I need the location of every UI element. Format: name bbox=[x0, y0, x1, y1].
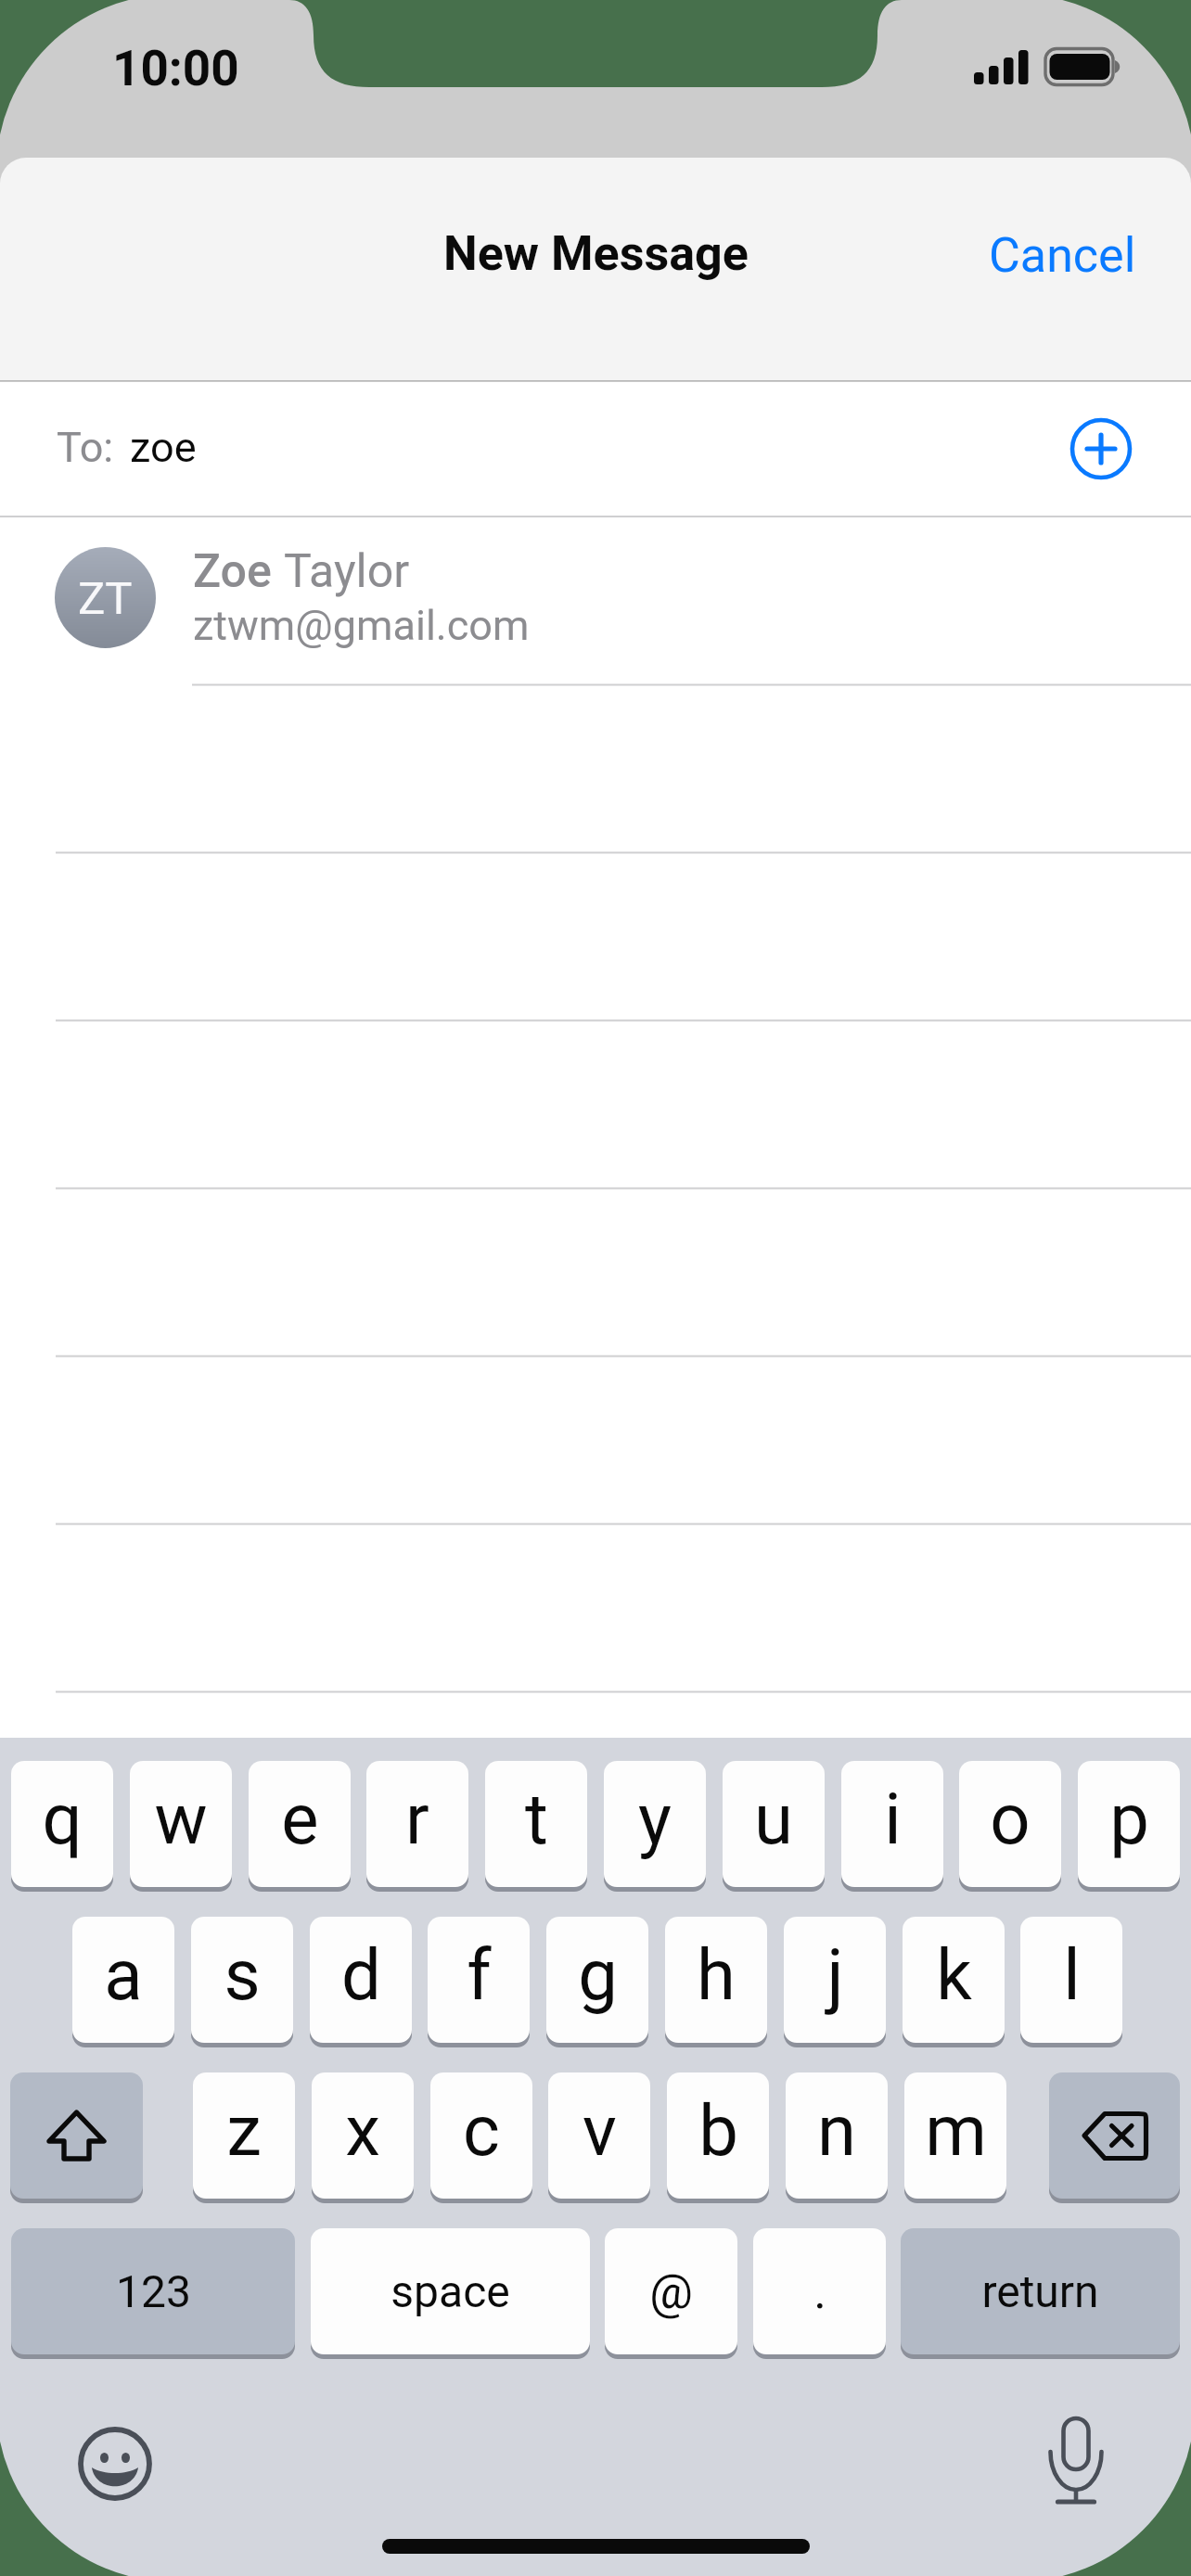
button[interactable]: m bbox=[904, 2072, 1006, 2203]
button[interactable]: j bbox=[784, 1917, 886, 2047]
button[interactable]: v bbox=[548, 2072, 650, 2203]
button[interactable]: e bbox=[249, 1761, 351, 1892]
button[interactable]: u bbox=[723, 1761, 825, 1892]
staticText: ZT bbox=[78, 572, 133, 625]
button[interactable]: y bbox=[604, 1761, 706, 1892]
button[interactable]: 123 bbox=[11, 2228, 295, 2359]
button[interactable]: r bbox=[366, 1761, 468, 1892]
button[interactable]: g bbox=[546, 1917, 648, 2047]
staticText: f bbox=[467, 1933, 492, 2016]
staticText: z bbox=[226, 2089, 262, 2172]
staticText: b bbox=[698, 2089, 738, 2172]
staticText: y bbox=[638, 1778, 672, 1860]
button[interactable]: a bbox=[72, 1917, 174, 2047]
button[interactable]: b bbox=[667, 2072, 769, 2203]
button[interactable]: w bbox=[130, 1761, 232, 1892]
staticText: c bbox=[463, 2089, 500, 2172]
button[interactable]: @ bbox=[605, 2228, 737, 2359]
button[interactable]: ZT bbox=[0, 515, 1191, 680]
button[interactable]: Backspace bbox=[1049, 2072, 1180, 2203]
button[interactable]: return bbox=[901, 2228, 1180, 2359]
button[interactable]: k bbox=[903, 1917, 1005, 2047]
staticText: r bbox=[405, 1778, 429, 1860]
staticText: @ bbox=[649, 2264, 693, 2320]
staticText: w bbox=[154, 1778, 208, 1860]
staticText: p bbox=[1109, 1778, 1149, 1860]
staticText: j bbox=[826, 1933, 844, 2016]
staticText: t bbox=[525, 1778, 548, 1860]
button[interactable]: i bbox=[841, 1761, 943, 1892]
staticText: Zoe bbox=[193, 544, 272, 599]
button[interactable]: p bbox=[1078, 1761, 1180, 1892]
staticText: n bbox=[817, 2089, 856, 2172]
button[interactable]: h bbox=[665, 1917, 767, 2047]
button[interactable]: To: bbox=[0, 380, 1191, 516]
staticText: k bbox=[936, 1933, 972, 2016]
staticText: m bbox=[925, 2089, 987, 2172]
staticText: g bbox=[578, 1933, 618, 2016]
button[interactable]: f bbox=[428, 1917, 530, 2047]
staticText: Cancel bbox=[989, 227, 1136, 284]
staticText: return bbox=[981, 2265, 1099, 2317]
staticText: l bbox=[1063, 1933, 1081, 2016]
staticText: ztwm@gmail.com bbox=[193, 601, 530, 650]
staticText: To: bbox=[57, 423, 114, 472]
staticText: 10:00 bbox=[112, 40, 239, 97]
staticText: space bbox=[391, 2265, 510, 2317]
staticText: New Message bbox=[443, 225, 749, 282]
staticText: e bbox=[281, 1778, 319, 1860]
staticText: d bbox=[341, 1933, 381, 2016]
staticText: v bbox=[583, 2089, 617, 2172]
button[interactable]: z bbox=[193, 2072, 295, 2203]
button[interactable]: s bbox=[191, 1917, 293, 2047]
staticText: o bbox=[990, 1778, 1031, 1860]
button[interactable]: Shift bbox=[10, 2072, 143, 2203]
button[interactable]: o bbox=[959, 1761, 1061, 1892]
staticText: u bbox=[754, 1778, 793, 1860]
button[interactable]: . bbox=[753, 2228, 886, 2359]
button[interactable]: Add contact bbox=[1062, 410, 1140, 488]
button[interactable]: q bbox=[11, 1761, 113, 1892]
staticText: a bbox=[104, 1933, 143, 2016]
button[interactable]: Dictation bbox=[983, 2364, 1169, 2549]
button[interactable]: Emoji bbox=[22, 2371, 208, 2557]
staticText: 123 bbox=[116, 2265, 191, 2317]
button[interactable]: c bbox=[430, 2072, 532, 2203]
button[interactable]: t bbox=[485, 1761, 587, 1892]
button[interactable]: l bbox=[1020, 1917, 1122, 2047]
button[interactable]: x bbox=[312, 2072, 414, 2203]
button[interactable]: n bbox=[786, 2072, 888, 2203]
staticText: x bbox=[345, 2089, 380, 2172]
staticText: h bbox=[697, 1933, 736, 2016]
button[interactable]: space bbox=[311, 2228, 590, 2359]
button[interactable]: d bbox=[310, 1917, 412, 2047]
staticText: . bbox=[813, 2264, 826, 2320]
staticText: s bbox=[224, 1933, 261, 2016]
staticText: zoe bbox=[130, 423, 197, 472]
staticText: Taylor bbox=[284, 544, 410, 599]
staticText: i bbox=[884, 1778, 902, 1860]
button[interactable]: Cancel bbox=[934, 212, 1191, 299]
staticText: q bbox=[42, 1778, 83, 1860]
